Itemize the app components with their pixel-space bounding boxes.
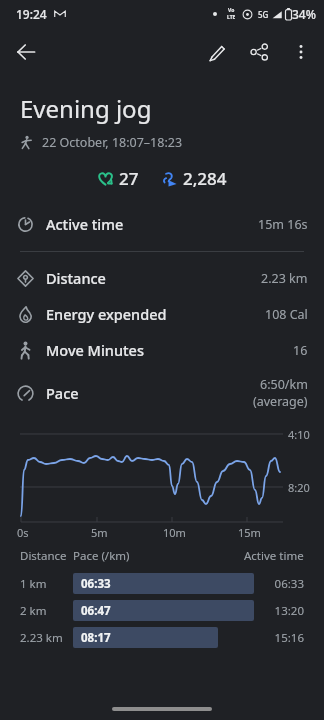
staticText: Distance — [20, 548, 73, 564]
staticText: 5G — [258, 9, 269, 20]
button[interactable]: Pace — [0, 372, 324, 414]
staticText: 08:17 — [81, 630, 111, 646]
button[interactable]: 27 — [97, 167, 139, 190]
staticText: 27 — [119, 167, 139, 190]
staticText: 16 — [293, 342, 308, 359]
button[interactable]: 2.23 km — [20, 627, 304, 648]
button[interactable]: Distance — [0, 264, 324, 292]
button[interactable]: More options — [280, 31, 322, 73]
staticText: 108 Cal — [265, 306, 308, 323]
staticText: 2.23 km — [20, 630, 73, 646]
staticText: Vo — [228, 7, 235, 14]
staticText: 15m 16s — [258, 216, 308, 233]
button[interactable]: Back — [4, 30, 48, 74]
button[interactable]: 1 km — [20, 573, 304, 594]
staticText: 0s — [17, 525, 29, 540]
staticText: 6:50/km — [260, 376, 308, 393]
button[interactable]: Move Minutes — [0, 336, 324, 364]
staticText: 5m — [91, 525, 108, 540]
staticText: Active time — [46, 214, 124, 234]
button[interactable]: Share — [238, 31, 280, 73]
button[interactable]: Active time — [0, 210, 324, 238]
staticText: 2 km — [20, 603, 73, 619]
staticText: 06:33 — [81, 576, 111, 592]
staticText: 06:33 — [260, 576, 304, 592]
staticText: 2,284 — [183, 167, 227, 190]
staticText: Active time — [244, 548, 304, 564]
staticText: 22 October, 18:07–18:23 — [42, 134, 183, 151]
button[interactable]: Energy expended — [0, 300, 324, 328]
button[interactable]: 2,284 — [161, 167, 227, 190]
staticText: Pace — [46, 383, 79, 403]
staticText: Pace (/km) — [73, 548, 244, 564]
staticText: 8:20 — [288, 480, 310, 495]
staticText: 10m — [163, 525, 186, 540]
staticText: Energy expended — [46, 304, 167, 324]
staticText: 13:20 — [260, 603, 304, 619]
staticText: 1 km — [20, 576, 73, 592]
staticText: Distance — [46, 268, 106, 288]
staticText: LTE — [227, 14, 236, 21]
staticText: 34% — [292, 6, 316, 22]
staticText: 4:10 — [288, 427, 310, 442]
button[interactable]: Edit — [196, 31, 238, 73]
staticText: 06:47 — [81, 603, 111, 619]
staticText: 15m — [238, 525, 261, 540]
staticText: 15:16 — [260, 630, 304, 646]
staticText: Evening jog — [20, 92, 152, 125]
button[interactable]: 2 km — [20, 600, 304, 621]
staticText: 2.23 km — [261, 270, 308, 287]
staticText: (average) — [253, 393, 308, 410]
staticText: 19:24 — [16, 6, 47, 22]
staticText: Move Minutes — [46, 340, 144, 360]
